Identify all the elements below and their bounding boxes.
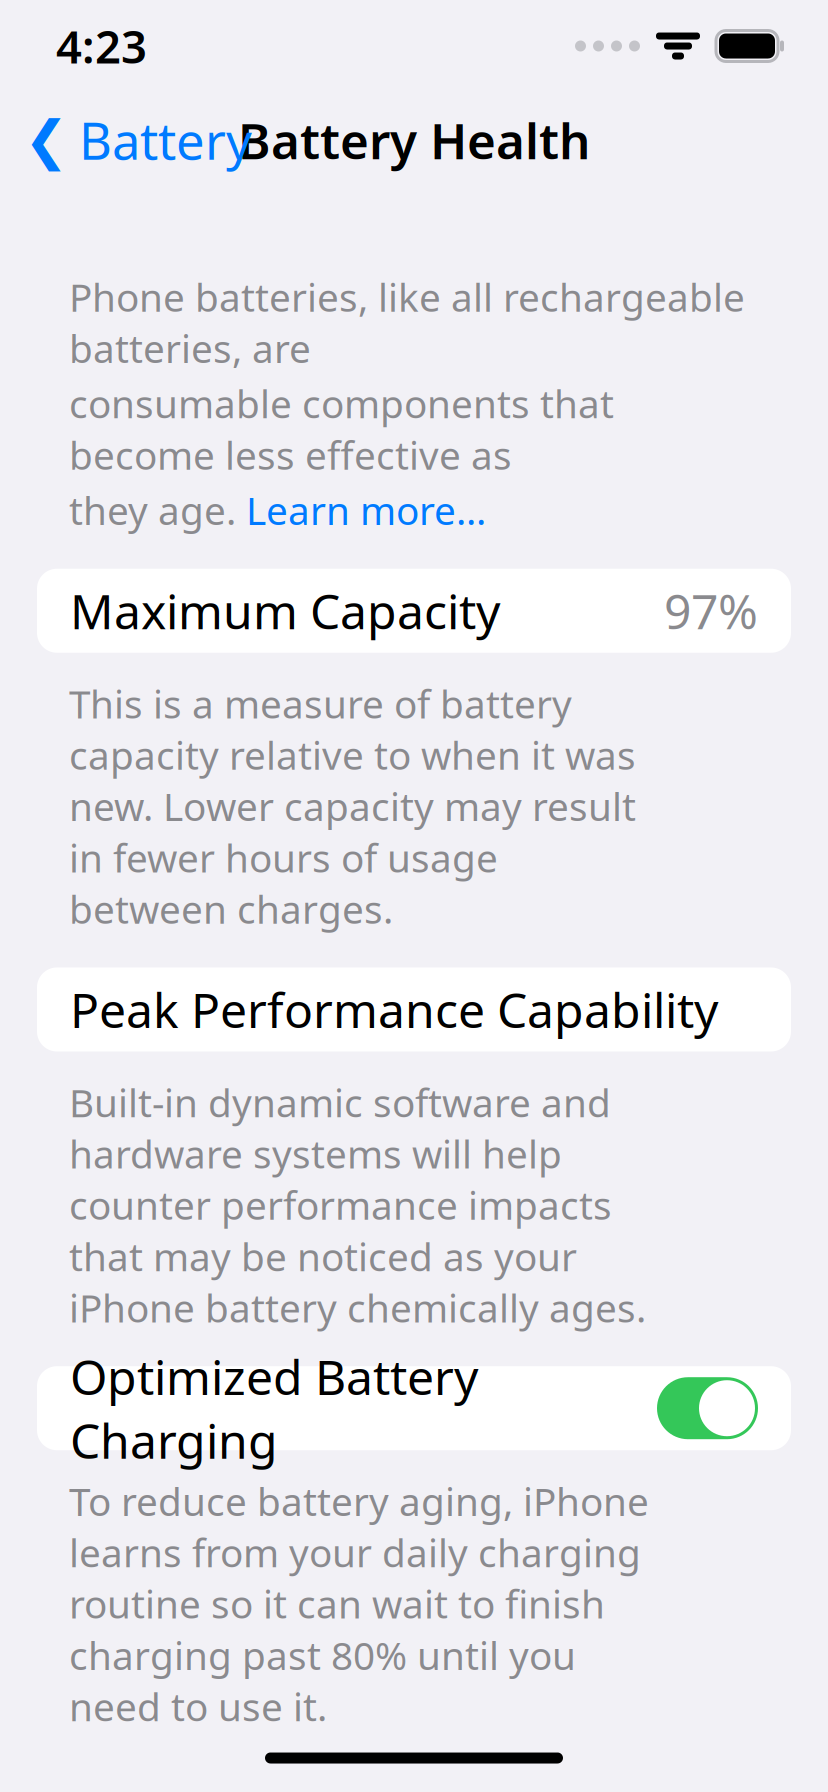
button[interactable]: Maximum Capacity — [37, 569, 791, 653]
staticText: consumable components that become less e… — [69, 378, 614, 480]
staticText: Learn more... — [246, 484, 486, 536]
staticText: 97% — [664, 579, 758, 643]
button[interactable]: Peak Performance Capability — [37, 967, 791, 1051]
button[interactable]: Learn more... — [246, 484, 486, 536]
button[interactable]: Optimized Battery Charging — [657, 1377, 758, 1439]
staticText: To reduce battery aging, iPhone learns f… — [69, 1475, 649, 1732]
staticText: Battery — [79, 106, 252, 174]
staticText: ❮ — [24, 110, 69, 170]
staticText: 4:23 — [56, 16, 147, 76]
staticText: Peak Performance Capability — [70, 978, 718, 1041]
staticText: Maximum Capacity — [70, 579, 500, 643]
button[interactable]: ❮ — [0, 92, 252, 188]
staticText: they age. — [69, 484, 246, 536]
staticText: Battery Health — [238, 107, 590, 173]
staticText: This is a measure of battery capacity re… — [69, 678, 636, 934]
staticText: Built-in dynamic software and hardware s… — [69, 1076, 646, 1333]
staticText: Optimized Battery Charging — [70, 1344, 478, 1472]
staticText: Phone batteries, like all rechargeable b… — [69, 271, 745, 374]
